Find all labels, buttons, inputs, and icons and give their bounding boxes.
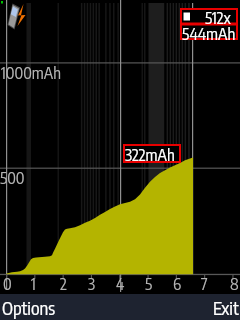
button[interactable]: Exit [213, 294, 239, 320]
button[interactable]: 512x [180, 8, 238, 40]
staticText: 2 [60, 274, 67, 294]
staticText: 5 [145, 274, 153, 294]
staticText: 0 [3, 274, 12, 294]
staticText: 500 [0, 168, 25, 188]
staticText: 8 [230, 274, 239, 294]
staticText: 7 [201, 274, 208, 294]
staticText: 6 [173, 274, 182, 294]
staticText: 1000mAh [1, 63, 61, 83]
button[interactable]: Options [2, 294, 56, 320]
staticText: 322mAh [125, 145, 175, 164]
staticText: 4 [116, 274, 125, 294]
button[interactable]: Charging [6, 2, 26, 32]
staticText: Options [2, 296, 56, 318]
staticText: 544mAh [182, 24, 236, 44]
staticText: Exit [213, 296, 239, 318]
staticText: 1 [31, 274, 36, 294]
staticText: 512x [205, 8, 231, 28]
staticText: 3 [88, 274, 96, 294]
button[interactable]: 322mAh [123, 144, 181, 163]
